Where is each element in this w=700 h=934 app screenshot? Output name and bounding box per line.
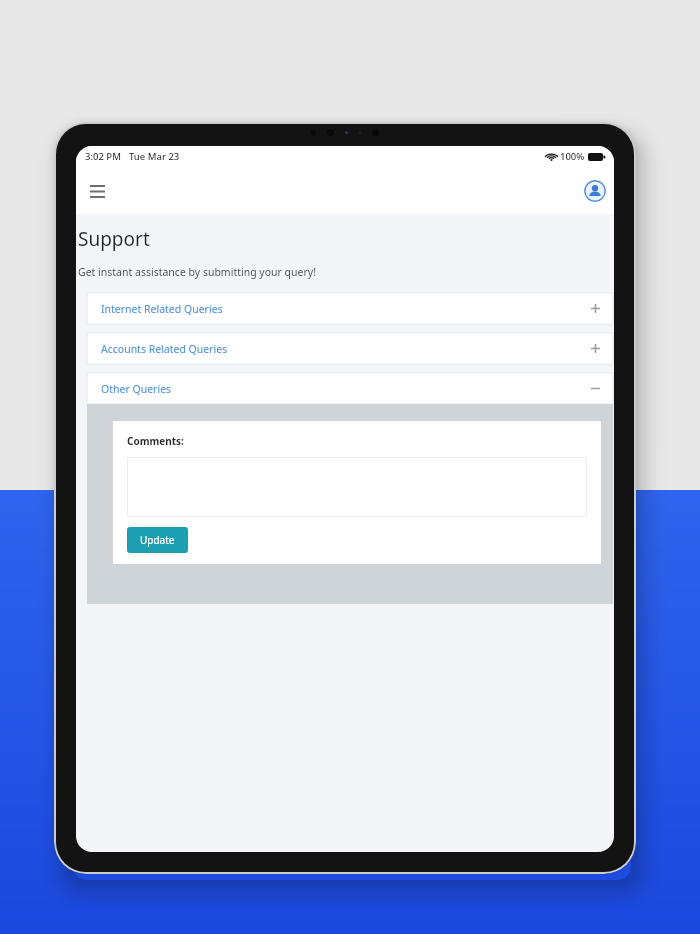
staticText: Tue Mar 23 <box>129 150 180 163</box>
button[interactable]: Update <box>127 527 188 553</box>
staticText: Other Queries <box>101 382 172 396</box>
button[interactable]: Other Queries <box>87 373 613 404</box>
staticText: Accounts Related Queries <box>101 342 228 356</box>
staticText: 100% <box>560 150 585 163</box>
staticText: Internet Related Queries <box>101 302 223 316</box>
staticText: 3:02 PM <box>85 150 121 163</box>
button[interactable]: Internet Related Queries <box>87 293 613 324</box>
staticText: Update <box>140 533 175 547</box>
staticText: Support <box>78 226 150 252</box>
staticText: Comments: <box>127 434 184 448</box>
button[interactable]: Account <box>584 180 606 202</box>
staticText: Get instant assistance by submitting you… <box>78 265 317 279</box>
button[interactable]: Menu <box>82 176 112 206</box>
button[interactable] <box>127 457 587 517</box>
button[interactable]: Accounts Related Queries <box>87 333 613 364</box>
